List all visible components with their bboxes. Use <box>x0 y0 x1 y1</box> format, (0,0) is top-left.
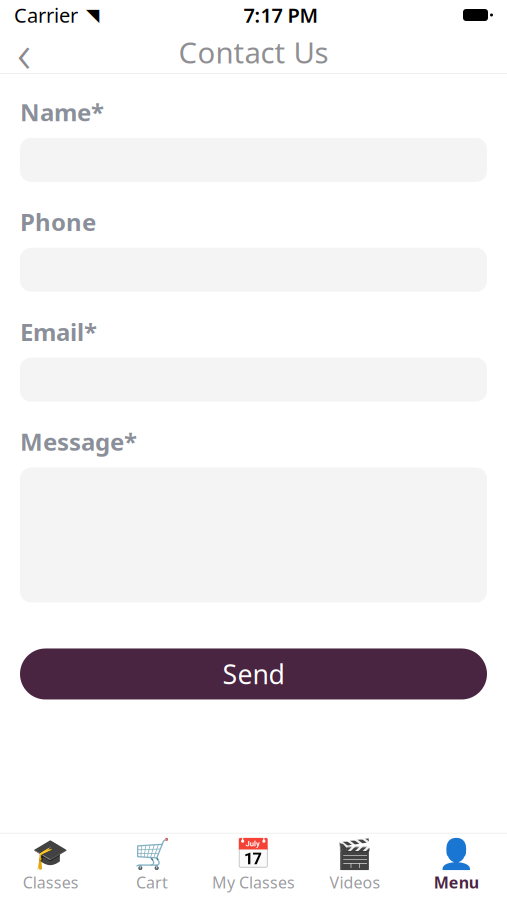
staticText: Email* <box>20 316 97 348</box>
button[interactable]: 👤 <box>406 834 507 900</box>
staticText: 🎓 <box>32 837 69 870</box>
staticText: Menu <box>434 872 479 893</box>
staticText: 📅 <box>235 837 272 870</box>
button[interactable]: 🛒 <box>101 834 203 900</box>
staticText: Phone <box>20 206 96 238</box>
staticText: Videos <box>329 872 380 893</box>
button[interactable]: 🎓 <box>0 834 101 900</box>
staticText: Cart <box>136 872 168 893</box>
staticText: Send <box>222 656 284 692</box>
staticText: 🎬 <box>336 837 373 870</box>
button[interactable]: 📅 <box>203 834 304 900</box>
staticText: Carrier <box>14 2 78 28</box>
staticText: Classes <box>23 872 79 893</box>
staticText: ◥ <box>86 5 99 25</box>
staticText: Name* <box>20 96 104 128</box>
staticText: 🛒 <box>134 837 171 870</box>
staticText: Message* <box>20 426 137 457</box>
button[interactable]: Back <box>0 30 48 74</box>
staticText: My Classes <box>212 872 295 893</box>
staticText: 👤 <box>438 837 475 870</box>
staticText: ‹ <box>17 17 31 87</box>
button[interactable]: 🎬 <box>304 834 406 900</box>
staticText: 7:17 PM <box>243 2 318 28</box>
button[interactable]: Send <box>20 648 487 699</box>
staticText: Contact Us <box>178 32 328 71</box>
